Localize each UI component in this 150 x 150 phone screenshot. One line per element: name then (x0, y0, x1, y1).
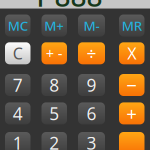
staticText: M+ (44, 17, 64, 34)
staticText: ÷ (86, 42, 96, 65)
button[interactable]: MR (119, 14, 144, 36)
staticText: − (126, 73, 137, 97)
staticText: 9 (86, 73, 96, 96)
staticText: 3 (86, 131, 96, 150)
button[interactable]: M+ (41, 14, 67, 36)
staticText: MC (8, 17, 28, 34)
button[interactable]: 9 (78, 74, 105, 96)
staticText: 7 (13, 73, 23, 96)
button[interactable]: 5 (41, 102, 67, 124)
staticText: + (126, 101, 137, 126)
button[interactable]: 3 (78, 132, 105, 150)
staticText: 5 (49, 102, 59, 125)
button[interactable]: 8 (41, 74, 67, 96)
button[interactable]: 2 (41, 132, 67, 150)
staticText: + - (46, 44, 63, 63)
button[interactable]: M- (78, 14, 105, 36)
staticText: 1 (13, 131, 23, 150)
staticText: 8 (49, 73, 59, 96)
button[interactable]: 1 (5, 132, 30, 150)
staticText: MR (122, 17, 142, 34)
button[interactable] (119, 132, 144, 150)
staticText: 1 888 (31, 0, 102, 15)
button[interactable]: MC (5, 14, 30, 36)
button[interactable]: + - (41, 42, 67, 64)
button[interactable]: − (119, 74, 144, 96)
button[interactable]: 4 (5, 102, 30, 124)
staticText: X (127, 43, 136, 64)
button[interactable]: C (5, 42, 30, 64)
button[interactable]: 7 (5, 74, 30, 96)
button[interactable]: 6 (78, 102, 105, 124)
staticText: 2 (49, 131, 59, 150)
button[interactable]: X (119, 42, 144, 64)
staticText: M- (83, 17, 99, 34)
staticText: C (13, 43, 23, 64)
staticText: 4 (13, 102, 23, 125)
staticText: 6 (86, 102, 96, 125)
button[interactable]: ÷ (78, 42, 105, 64)
button[interactable]: + (119, 102, 144, 124)
